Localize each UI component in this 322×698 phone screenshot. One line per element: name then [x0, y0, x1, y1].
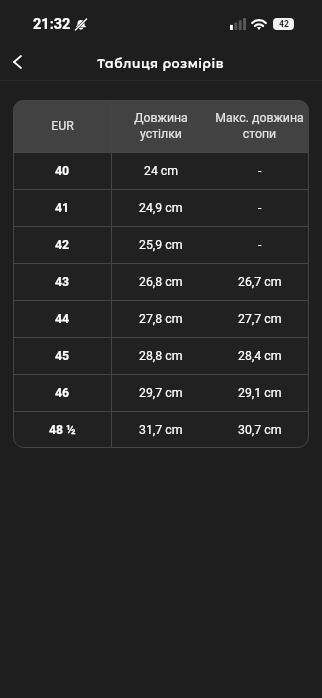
staticText: 26,7 cm — [238, 275, 282, 289]
staticText: - — [258, 238, 262, 252]
staticText: 28,4 cm — [238, 349, 282, 363]
staticText: 29,7 cm — [139, 386, 183, 400]
staticText: 45 — [55, 349, 70, 363]
staticText: Таблиця розмірів — [97, 56, 225, 71]
staticText: 31,7 cm — [139, 423, 183, 437]
staticText: 48 ½ — [49, 423, 76, 437]
button[interactable]: Back — [1, 46, 33, 78]
staticText: 44 — [55, 312, 70, 326]
staticText: 24 cm — [144, 164, 179, 178]
staticText: EUR — [51, 119, 74, 133]
staticText: Макс. довжина стопи — [215, 111, 304, 141]
staticText: 24,9 cm — [139, 201, 183, 215]
staticText: 29,1 cm — [238, 386, 282, 400]
staticText: 43 — [55, 275, 70, 289]
staticText: 27,8 cm — [139, 312, 183, 326]
staticText: 27,7 cm — [238, 312, 282, 326]
staticText: 41 — [55, 201, 70, 215]
staticText: 42 — [55, 238, 70, 252]
staticText: 42 — [279, 19, 289, 29]
staticText: 40 — [55, 164, 70, 178]
staticText: 21:32 — [33, 16, 71, 33]
staticText: Довжина устілки — [134, 111, 188, 141]
staticText: 26,8 cm — [139, 275, 183, 289]
staticText: 46 — [55, 386, 70, 400]
staticText: - — [258, 201, 262, 215]
staticText: 30,7 cm — [238, 423, 282, 437]
staticText: - — [258, 164, 262, 178]
staticText: 28,8 cm — [139, 349, 183, 363]
staticText: 25,9 cm — [139, 238, 183, 252]
